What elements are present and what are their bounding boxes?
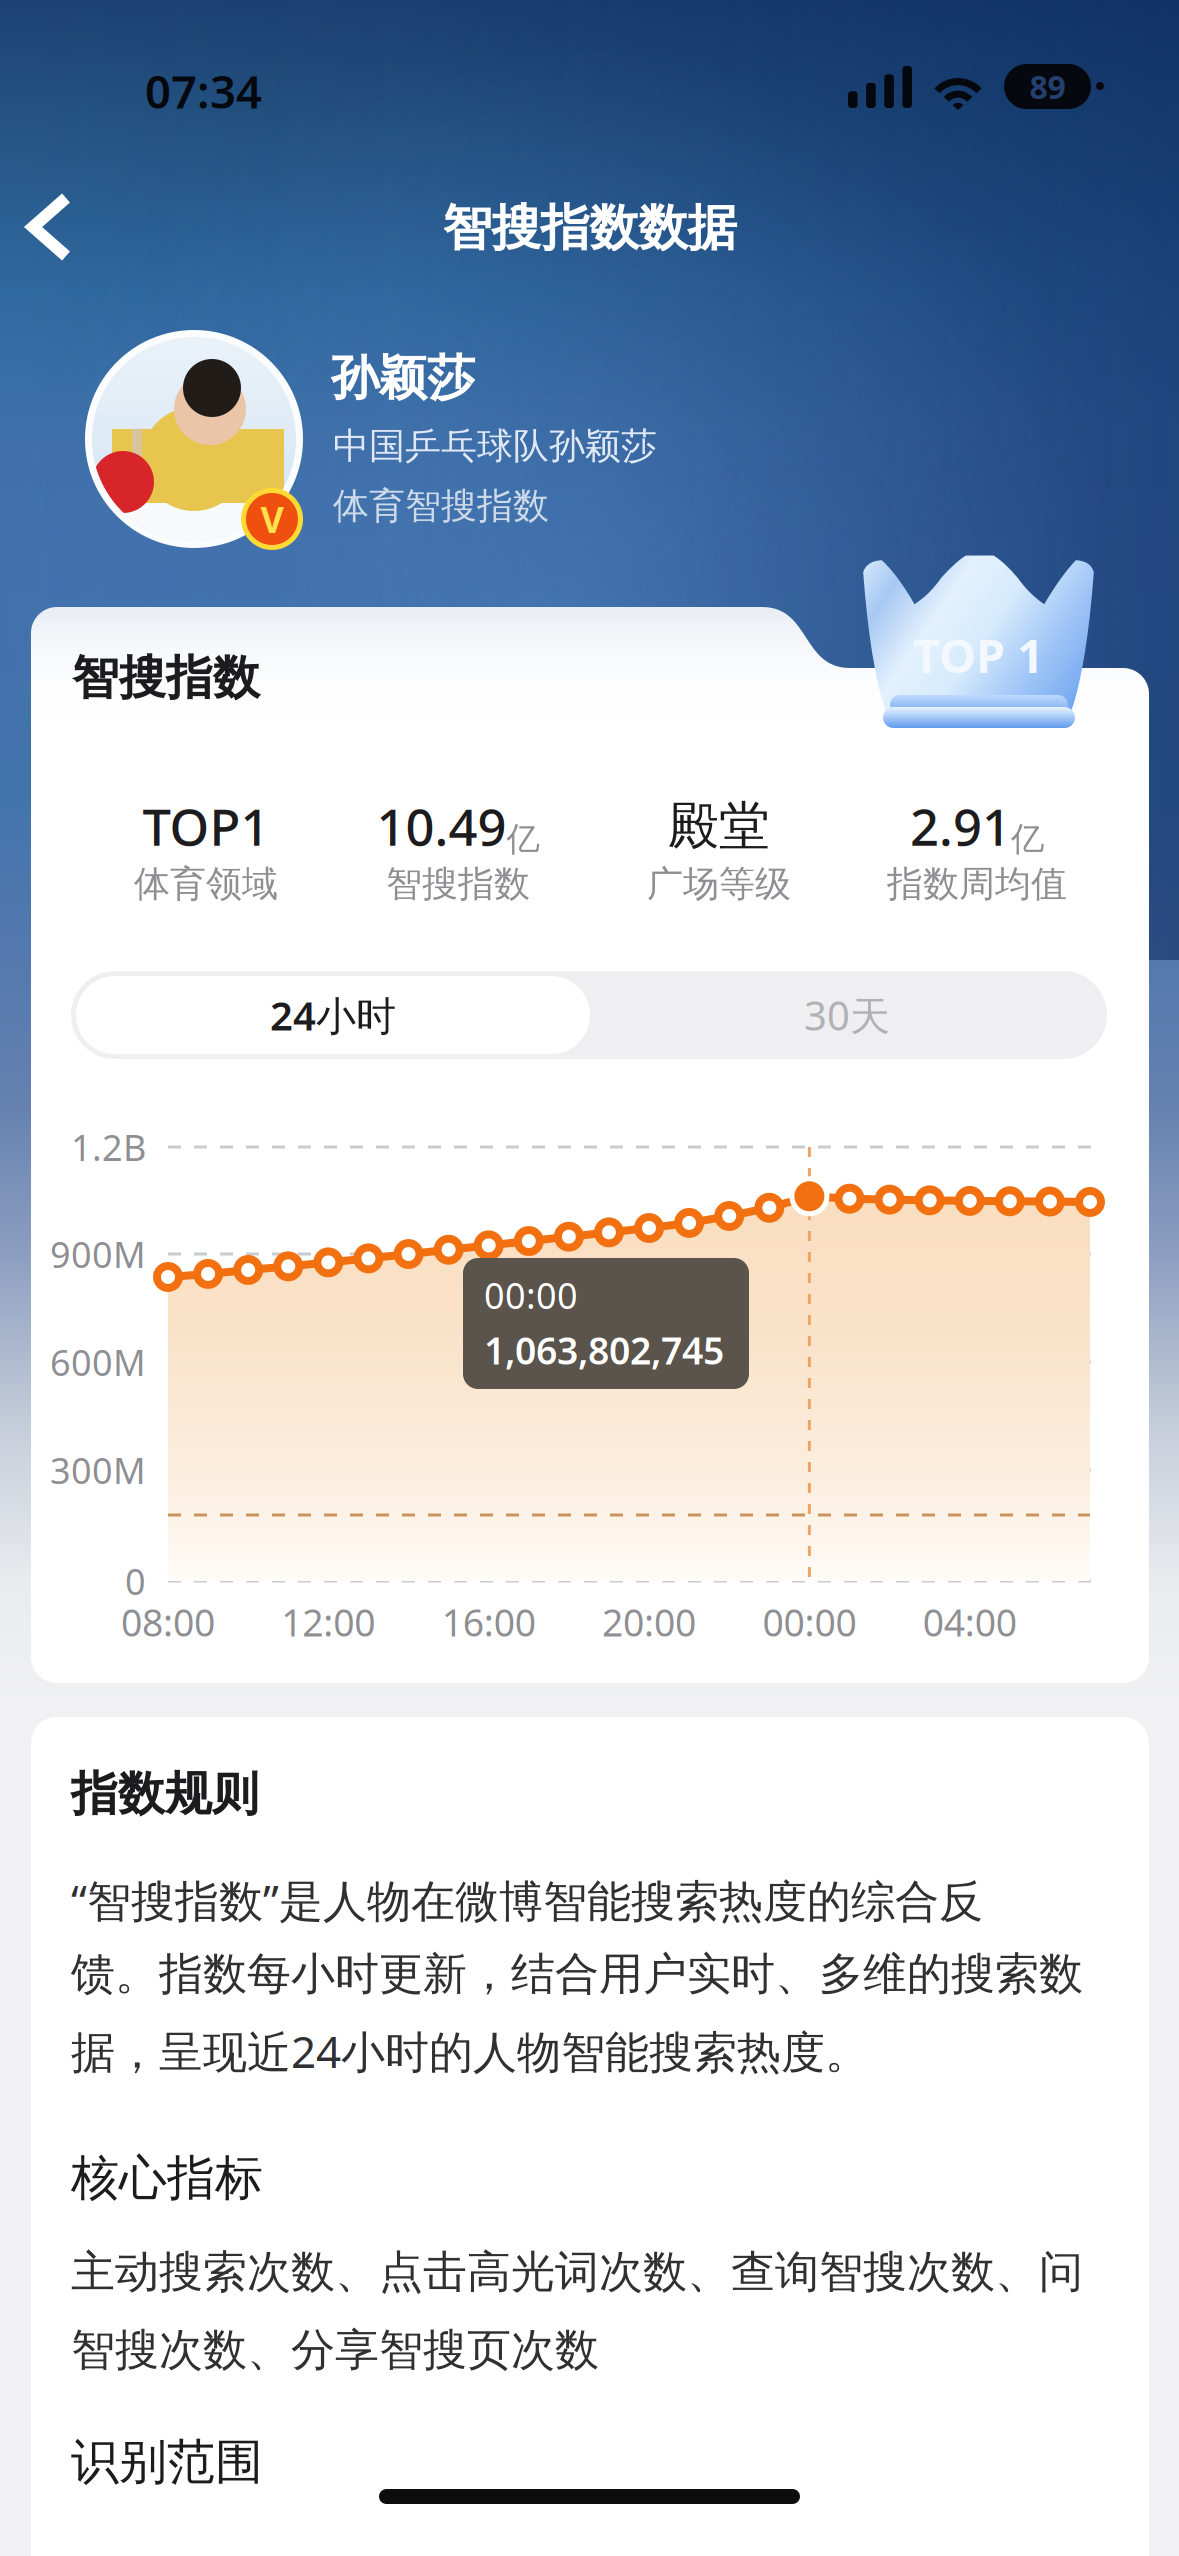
staticText: 30天 xyxy=(804,988,890,1041)
button[interactable]: Back xyxy=(4,156,100,298)
staticText: 1,063,802,745 xyxy=(484,1325,724,1375)
staticText: 据，呈现近24小时的人物智能搜索热度。 xyxy=(71,2022,869,2080)
staticText: 20:00 xyxy=(602,1597,696,1647)
button[interactable]: 30天 xyxy=(590,976,1104,1054)
staticText: 04:00 xyxy=(923,1597,1017,1647)
button[interactable]: 24小时 xyxy=(76,976,590,1054)
staticText: 2.91 xyxy=(910,792,1011,860)
staticText: 指数周均值 xyxy=(887,862,1067,906)
staticText: 智搜指数数据 xyxy=(442,198,736,258)
staticText: 中国乒乓球队孙颖莎 xyxy=(333,424,657,468)
staticText: 智搜次数、分享智搜页次数 xyxy=(71,2323,599,2377)
staticText: 07:34 xyxy=(145,61,262,121)
staticText: TOP 1 xyxy=(913,624,1044,686)
staticText: 智搜指数 xyxy=(386,862,530,906)
staticText: 12:00 xyxy=(281,1597,375,1647)
staticText: 体育智搜指数 xyxy=(333,484,549,528)
staticText: 600M xyxy=(50,1338,146,1386)
staticText: 亿 xyxy=(1011,819,1044,860)
staticText: 89 xyxy=(1029,65,1065,108)
staticText: 1.2B xyxy=(71,1123,146,1171)
staticText: 智搜指数 xyxy=(72,649,260,707)
staticText: 900M xyxy=(50,1230,146,1278)
staticText: V xyxy=(260,495,283,543)
staticText: 08:00 xyxy=(121,1597,215,1647)
staticText: 00:00 xyxy=(762,1597,856,1647)
staticText: 24小时 xyxy=(270,988,396,1041)
staticText: 孙颖莎 xyxy=(331,348,475,407)
staticText: 广场等级 xyxy=(647,862,791,906)
staticText: 馈。指数每小时更新，结合用户实时、多维的搜索数 xyxy=(71,1947,1083,2001)
staticText: TOP1 xyxy=(142,792,269,860)
staticText: 16:00 xyxy=(442,1597,536,1647)
staticText: 300M xyxy=(50,1446,146,1494)
staticText: 10.49 xyxy=(376,792,506,860)
staticText: 0 xyxy=(125,1557,146,1605)
staticText: “智搜指数”是人物在微博智能搜索热度的综合反 xyxy=(71,1871,983,1929)
staticText: 殿堂 xyxy=(668,795,770,857)
staticText: 00:00 xyxy=(484,1271,578,1319)
staticText: 指数规则 xyxy=(71,1765,259,1823)
staticText: 主动搜索次数、点击高光词次数、查询智搜次数、问 xyxy=(71,2245,1083,2299)
staticText: 亿 xyxy=(506,819,539,860)
staticText: 核心指标 xyxy=(71,2148,263,2207)
staticText: 体育领域 xyxy=(134,862,278,906)
staticText: 识别范围 xyxy=(71,2432,263,2491)
